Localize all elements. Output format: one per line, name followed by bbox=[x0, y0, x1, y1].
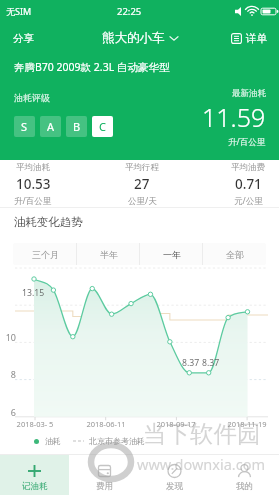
staticText: B bbox=[73, 119, 81, 134]
staticText: 记油耗 bbox=[22, 481, 48, 492]
staticText: 平均油耗 bbox=[16, 162, 50, 173]
staticText: www.downxia.com bbox=[137, 454, 265, 474]
staticText: 11.59 bbox=[202, 100, 266, 134]
staticText: 无SIM bbox=[6, 5, 32, 17]
staticText: 0.71 bbox=[235, 175, 262, 193]
staticText: 油耗变化趋势 bbox=[14, 215, 83, 229]
button[interactable]: 全部 bbox=[203, 243, 266, 265]
staticText: 公里/天 bbox=[128, 195, 157, 207]
staticText: 2018-03- 5 bbox=[7, 419, 63, 429]
staticText: 8 bbox=[0, 368, 16, 380]
staticText: 平均油费 bbox=[231, 162, 265, 173]
staticText: 13.15 bbox=[22, 287, 45, 299]
staticText: 全部 bbox=[226, 249, 244, 260]
button[interactable]: 平均行程 bbox=[125, 162, 159, 207]
button[interactable]: B bbox=[66, 116, 87, 137]
staticText: 升/百公里 bbox=[14, 195, 52, 207]
staticText: 27 bbox=[134, 175, 150, 193]
staticText: S bbox=[21, 119, 28, 134]
button[interactable]: 发现 bbox=[139, 455, 209, 495]
button[interactable]: 平均油耗 bbox=[14, 162, 52, 207]
button[interactable]: 熊大的小车 bbox=[96, 26, 184, 50]
button[interactable]: 三个月 bbox=[13, 243, 77, 265]
button[interactable]: 费用 bbox=[69, 455, 139, 495]
staticText: 平均行程 bbox=[125, 162, 159, 173]
staticText: 22:25 bbox=[117, 5, 142, 18]
staticText: 北京市参考油耗 bbox=[89, 436, 145, 446]
staticText: C bbox=[99, 119, 106, 134]
staticText: 我的 bbox=[236, 481, 253, 492]
staticText: 2018-06-11 bbox=[78, 419, 134, 429]
staticText: 8.37 bbox=[182, 357, 200, 369]
staticText: 发现 bbox=[166, 481, 183, 492]
staticText: 升/百公里 bbox=[228, 136, 266, 148]
button[interactable]: 半年 bbox=[77, 243, 140, 265]
button[interactable]: S bbox=[14, 116, 35, 137]
staticText: 10 bbox=[0, 331, 16, 343]
staticText: A bbox=[47, 119, 55, 134]
staticText: 三个月 bbox=[32, 249, 59, 260]
staticText: 油耗 bbox=[45, 436, 61, 446]
staticText: 10.53 bbox=[16, 175, 51, 193]
staticText: 详单 bbox=[246, 32, 267, 45]
staticText: 2018-11-19 bbox=[219, 419, 275, 429]
other: 详单 bbox=[231, 33, 242, 44]
button[interactable]: A bbox=[40, 116, 61, 137]
button[interactable]: 记油耗 bbox=[0, 455, 69, 495]
staticText: 油耗评级 bbox=[14, 92, 50, 103]
staticText: 费用 bbox=[96, 481, 113, 492]
button[interactable]: 分享 bbox=[0, 25, 47, 52]
staticText: 8.37 bbox=[202, 357, 220, 369]
button[interactable]: 我的 bbox=[209, 455, 279, 495]
staticText: 半年 bbox=[100, 249, 118, 260]
staticText: 2018-09-17 bbox=[148, 419, 204, 429]
staticText: 熊大的小车 bbox=[102, 30, 165, 46]
staticText: 6 bbox=[0, 406, 16, 418]
staticText: 当下软件园 bbox=[143, 419, 261, 449]
staticText: 分享 bbox=[13, 32, 34, 45]
button[interactable]: 平均油费 bbox=[231, 162, 265, 207]
staticText: 元/公里 bbox=[234, 195, 263, 207]
staticText: 一年 bbox=[163, 249, 181, 260]
staticText: 奔腾B70 2009款 2.3L 自动豪华型 bbox=[14, 60, 170, 74]
button[interactable]: 详单 bbox=[219, 26, 279, 51]
button[interactable]: 一年 bbox=[140, 243, 203, 265]
staticText: 最新油耗 bbox=[232, 88, 266, 99]
button[interactable]: C bbox=[92, 116, 113, 137]
